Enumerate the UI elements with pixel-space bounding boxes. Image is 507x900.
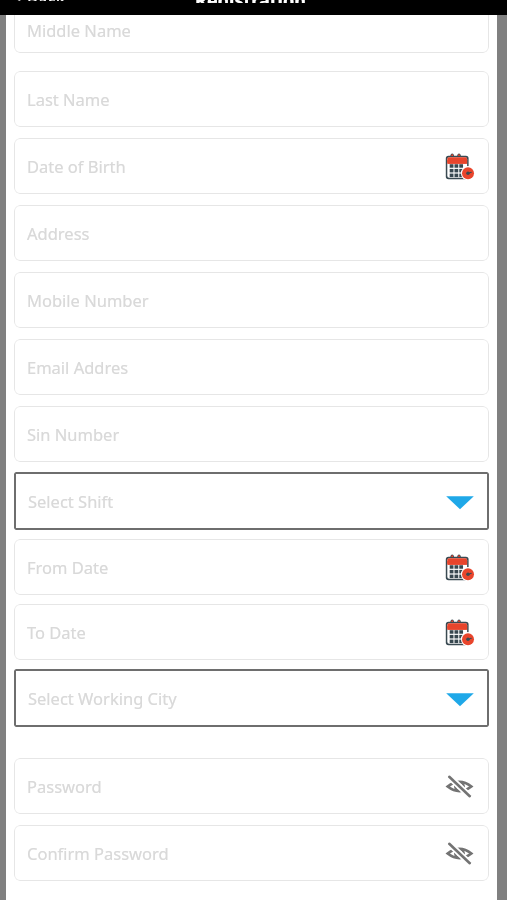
- button[interactable]: Date of Birth: [14, 138, 489, 194]
- staticText: Last Name: [27, 88, 110, 110]
- button[interactable]: Back: [0, 0, 73, 3]
- staticText: Confirm Password: [27, 842, 169, 864]
- button[interactable]: Email Addres: [14, 339, 489, 395]
- staticText: Password: [27, 775, 102, 797]
- button[interactable]: Pick date: [442, 615, 476, 649]
- button[interactable]: Mobile Number: [14, 272, 489, 328]
- staticText: Registration: [195, 0, 306, 3]
- staticText: Mobile Number: [27, 289, 149, 311]
- staticText: Date of Birth: [27, 155, 126, 177]
- staticText: Select Shift: [28, 490, 114, 512]
- button[interactable]: From Date: [14, 539, 489, 595]
- button[interactable]: Select Working City: [14, 669, 489, 727]
- button[interactable]: Pick date: [442, 149, 476, 183]
- staticText: Select Working City: [28, 687, 177, 709]
- button[interactable]: Address: [14, 205, 489, 261]
- button[interactable]: To Date: [14, 604, 489, 660]
- staticText: Sin Number: [27, 423, 120, 445]
- staticText: Middle Name: [27, 19, 131, 41]
- button[interactable]: Select Shift: [14, 472, 489, 530]
- button[interactable]: Confirm Password: [14, 825, 489, 881]
- staticText: Back: [27, 0, 65, 1]
- button[interactable]: Pick date: [442, 550, 476, 584]
- button[interactable]: Last Name: [14, 71, 489, 127]
- staticText: From Date: [27, 556, 109, 578]
- button[interactable]: Middle Name: [14, 6, 489, 53]
- staticText: To Date: [27, 621, 86, 643]
- button[interactable]: Sin Number: [14, 406, 489, 462]
- staticText: Address: [27, 222, 90, 244]
- staticText: Email Addres: [27, 356, 129, 378]
- button[interactable]: Password: [14, 758, 489, 814]
- button[interactable]: Toggle password visibility: [442, 836, 476, 870]
- button[interactable]: Toggle password visibility: [442, 769, 476, 803]
